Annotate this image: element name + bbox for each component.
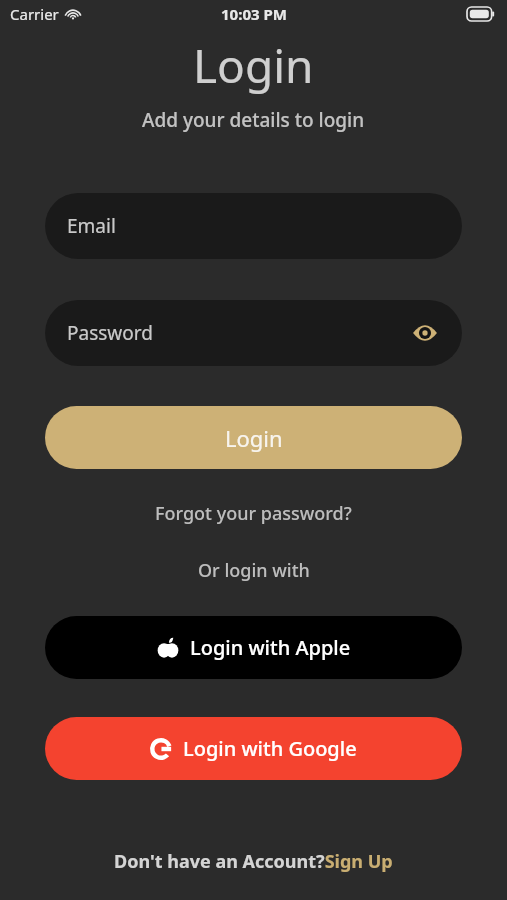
staticText: Forgot your password?	[155, 501, 352, 526]
button[interactable]: Password	[45, 300, 462, 366]
button[interactable]: Don't have an Account?Sign Up	[114, 849, 393, 874]
button[interactable]: Login with Apple	[45, 616, 462, 679]
staticText: 10:03 PM	[221, 4, 287, 24]
staticText: Email	[67, 213, 116, 239]
button[interactable]: Login with Google	[45, 717, 462, 780]
staticText: Login	[193, 34, 314, 97]
staticText: Carrier	[10, 4, 59, 24]
button[interactable]: Login	[45, 406, 462, 469]
button[interactable]: Email	[45, 193, 462, 259]
staticText: Add your details to login	[142, 107, 365, 133]
staticText: Password	[67, 320, 153, 346]
staticText: Login	[225, 423, 283, 453]
button[interactable]: Forgot your password?	[0, 495, 507, 532]
staticText: Don't have an Account?Sign Up	[114, 849, 393, 874]
staticText: Login with Google	[183, 735, 357, 762]
button[interactable]: Show password	[410, 318, 440, 348]
staticText: Login with Apple	[190, 634, 351, 661]
staticText: Or login with	[198, 558, 310, 583]
